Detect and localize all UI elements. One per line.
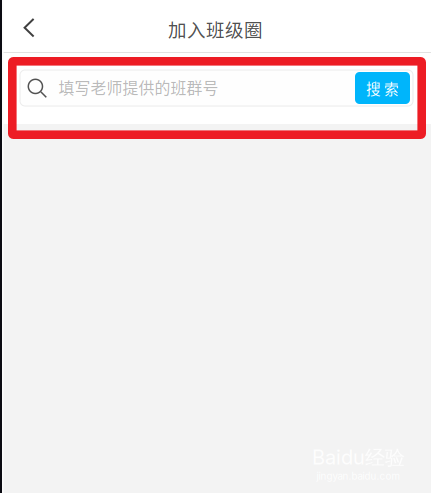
staticText: 搜 索	[366, 77, 399, 99]
staticText: Baidu经验	[312, 445, 405, 470]
staticText: 填写老师提供的班群号	[58, 75, 218, 98]
button[interactable]: 搜 索	[355, 72, 410, 104]
staticText: 加入班级圈	[168, 16, 263, 42]
button[interactable]: Back	[0, 0, 50, 52]
